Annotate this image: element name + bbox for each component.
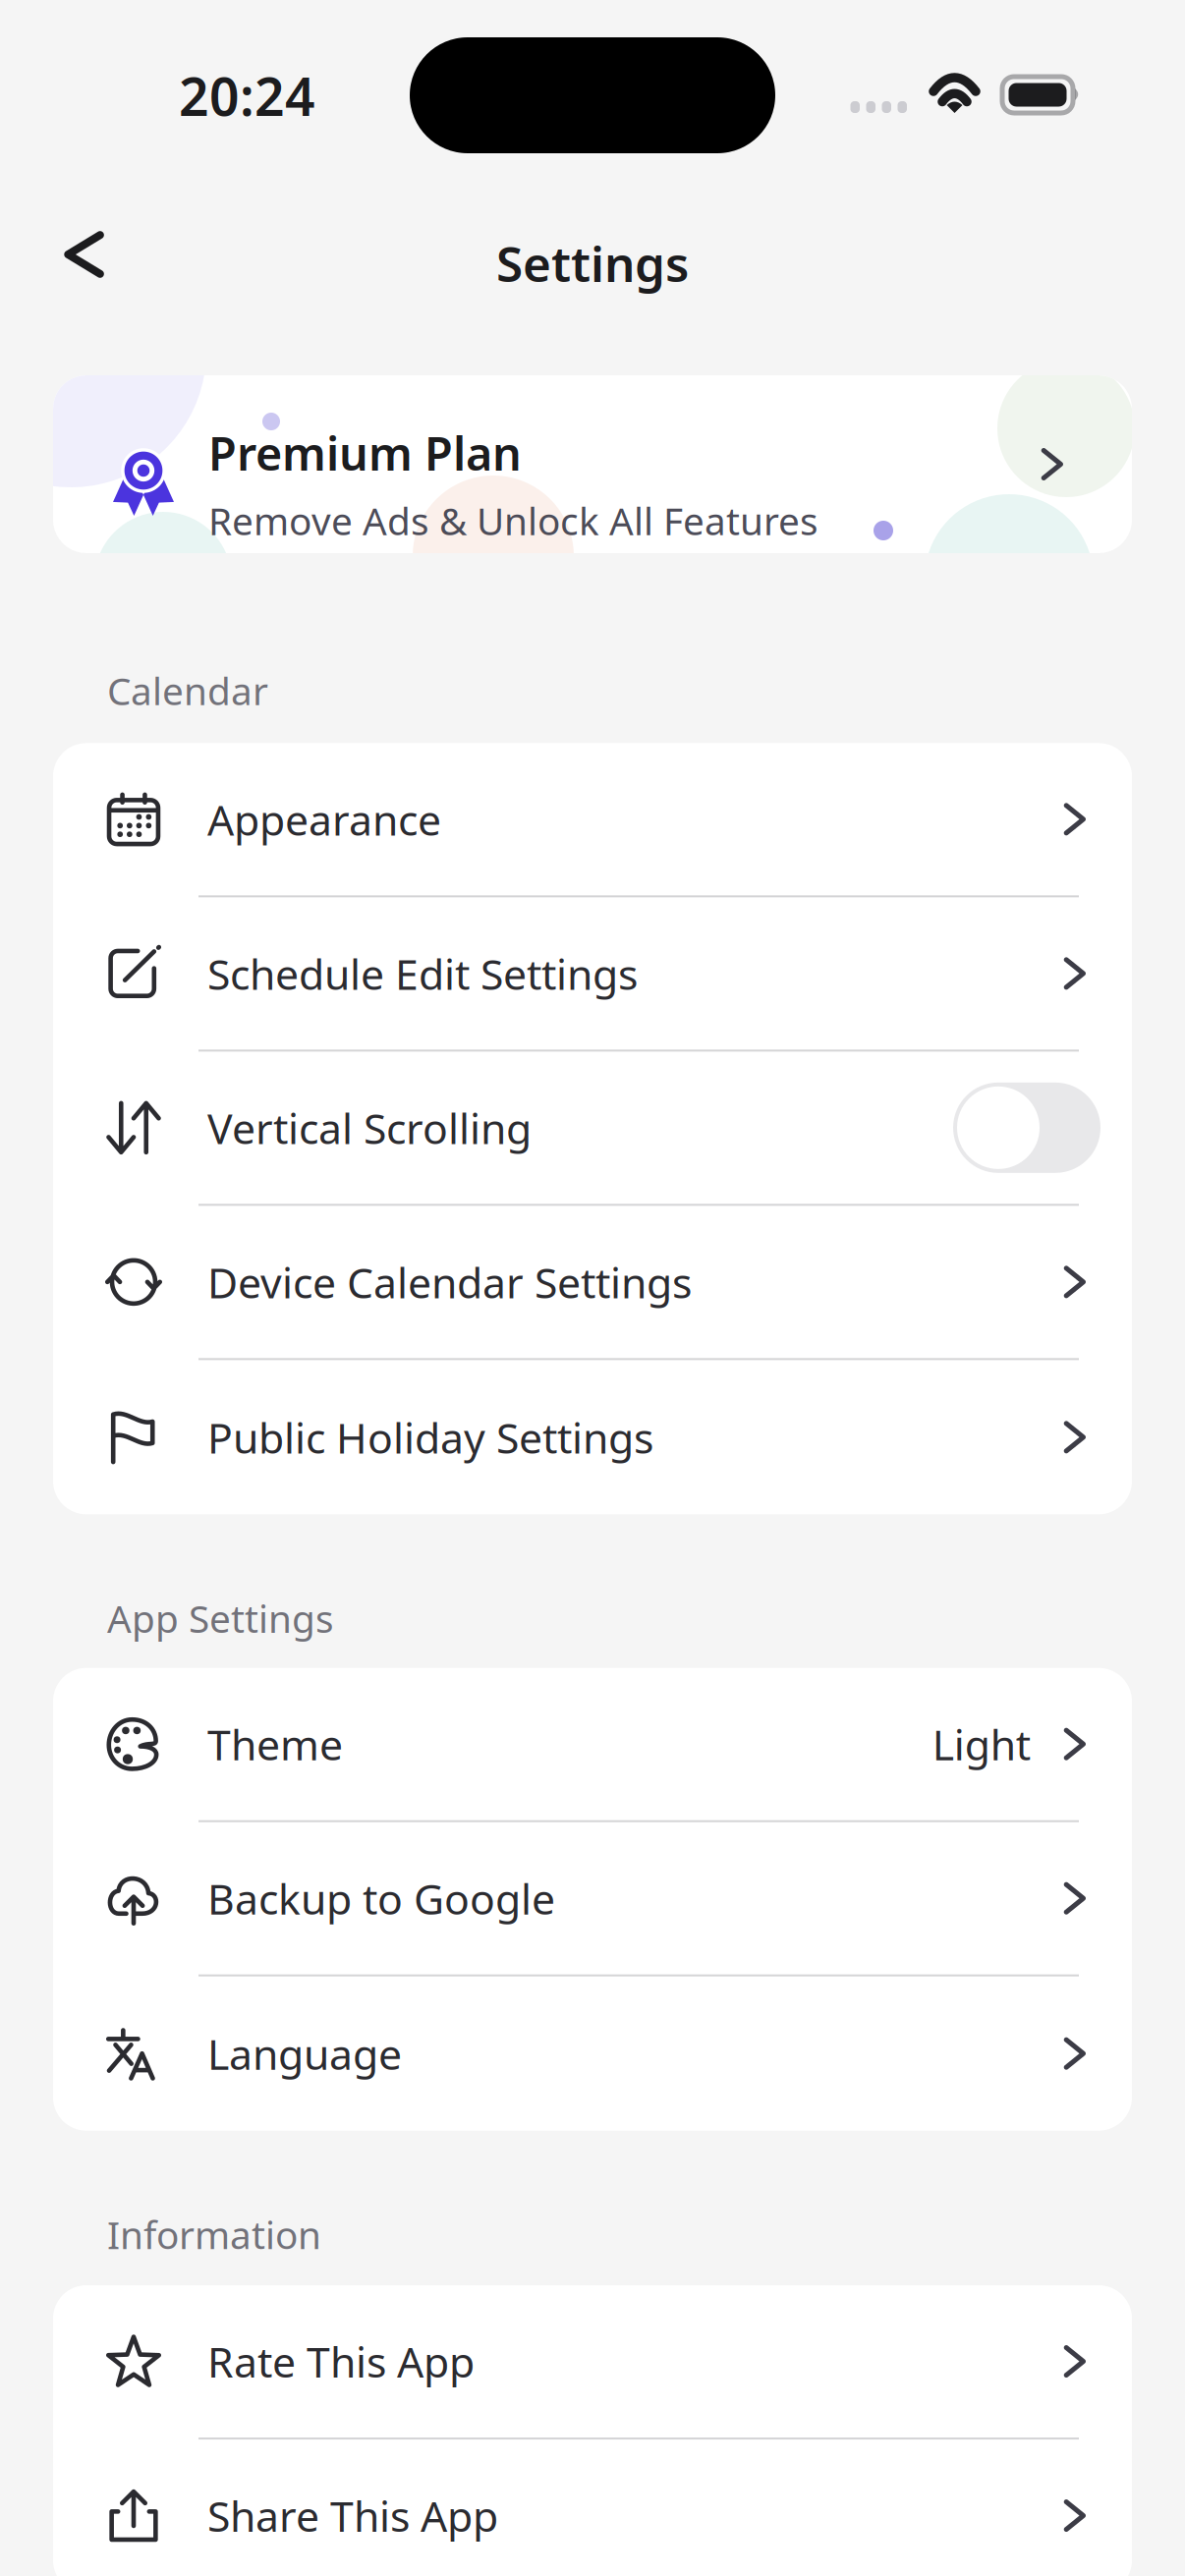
staticText: Appearance	[207, 791, 441, 847]
button[interactable]: Premium Plan	[53, 375, 1132, 553]
staticText: Schedule Edit Settings	[207, 946, 638, 1001]
staticText: Premium Plan	[208, 422, 522, 483]
button[interactable]: Language	[53, 1976, 1132, 2131]
staticText: Calendar	[107, 665, 268, 716]
staticText: Vertical Scrolling	[207, 1100, 532, 1156]
staticText: Settings	[496, 231, 689, 295]
button[interactable]: Schedule Edit Settings	[53, 897, 1132, 1050]
staticText: Backup to Google	[207, 1870, 555, 1926]
button[interactable]: Rate This App	[53, 2285, 1132, 2437]
staticText: Language	[207, 2026, 402, 2081]
staticText: Light	[932, 1716, 1030, 1772]
button[interactable]: Share This App	[53, 2439, 1132, 2576]
staticText: Information	[107, 2209, 321, 2260]
staticText: Theme	[207, 1716, 343, 1772]
button[interactable]: Public Holiday Settings	[53, 1360, 1132, 1514]
button[interactable]: Back	[33, 203, 136, 306]
button[interactable]: Backup to Google	[53, 1822, 1132, 1974]
staticText: Remove Ads & Unlock All Features	[208, 495, 818, 546]
staticText: Share This App	[207, 2488, 498, 2543]
staticText: 20:24	[179, 61, 315, 130]
staticText: Device Calendar Settings	[207, 1254, 692, 1310]
button[interactable]: Appearance	[53, 743, 1132, 895]
button[interactable]: Device Calendar Settings	[53, 1206, 1132, 1358]
button[interactable]: Theme	[53, 1668, 1132, 1820]
staticText: App Settings	[107, 1593, 334, 1643]
staticText: Public Holiday Settings	[207, 1409, 653, 1465]
button[interactable]: Vertical Scrolling	[53, 1052, 1132, 1204]
staticText: Rate This App	[207, 2334, 475, 2389]
